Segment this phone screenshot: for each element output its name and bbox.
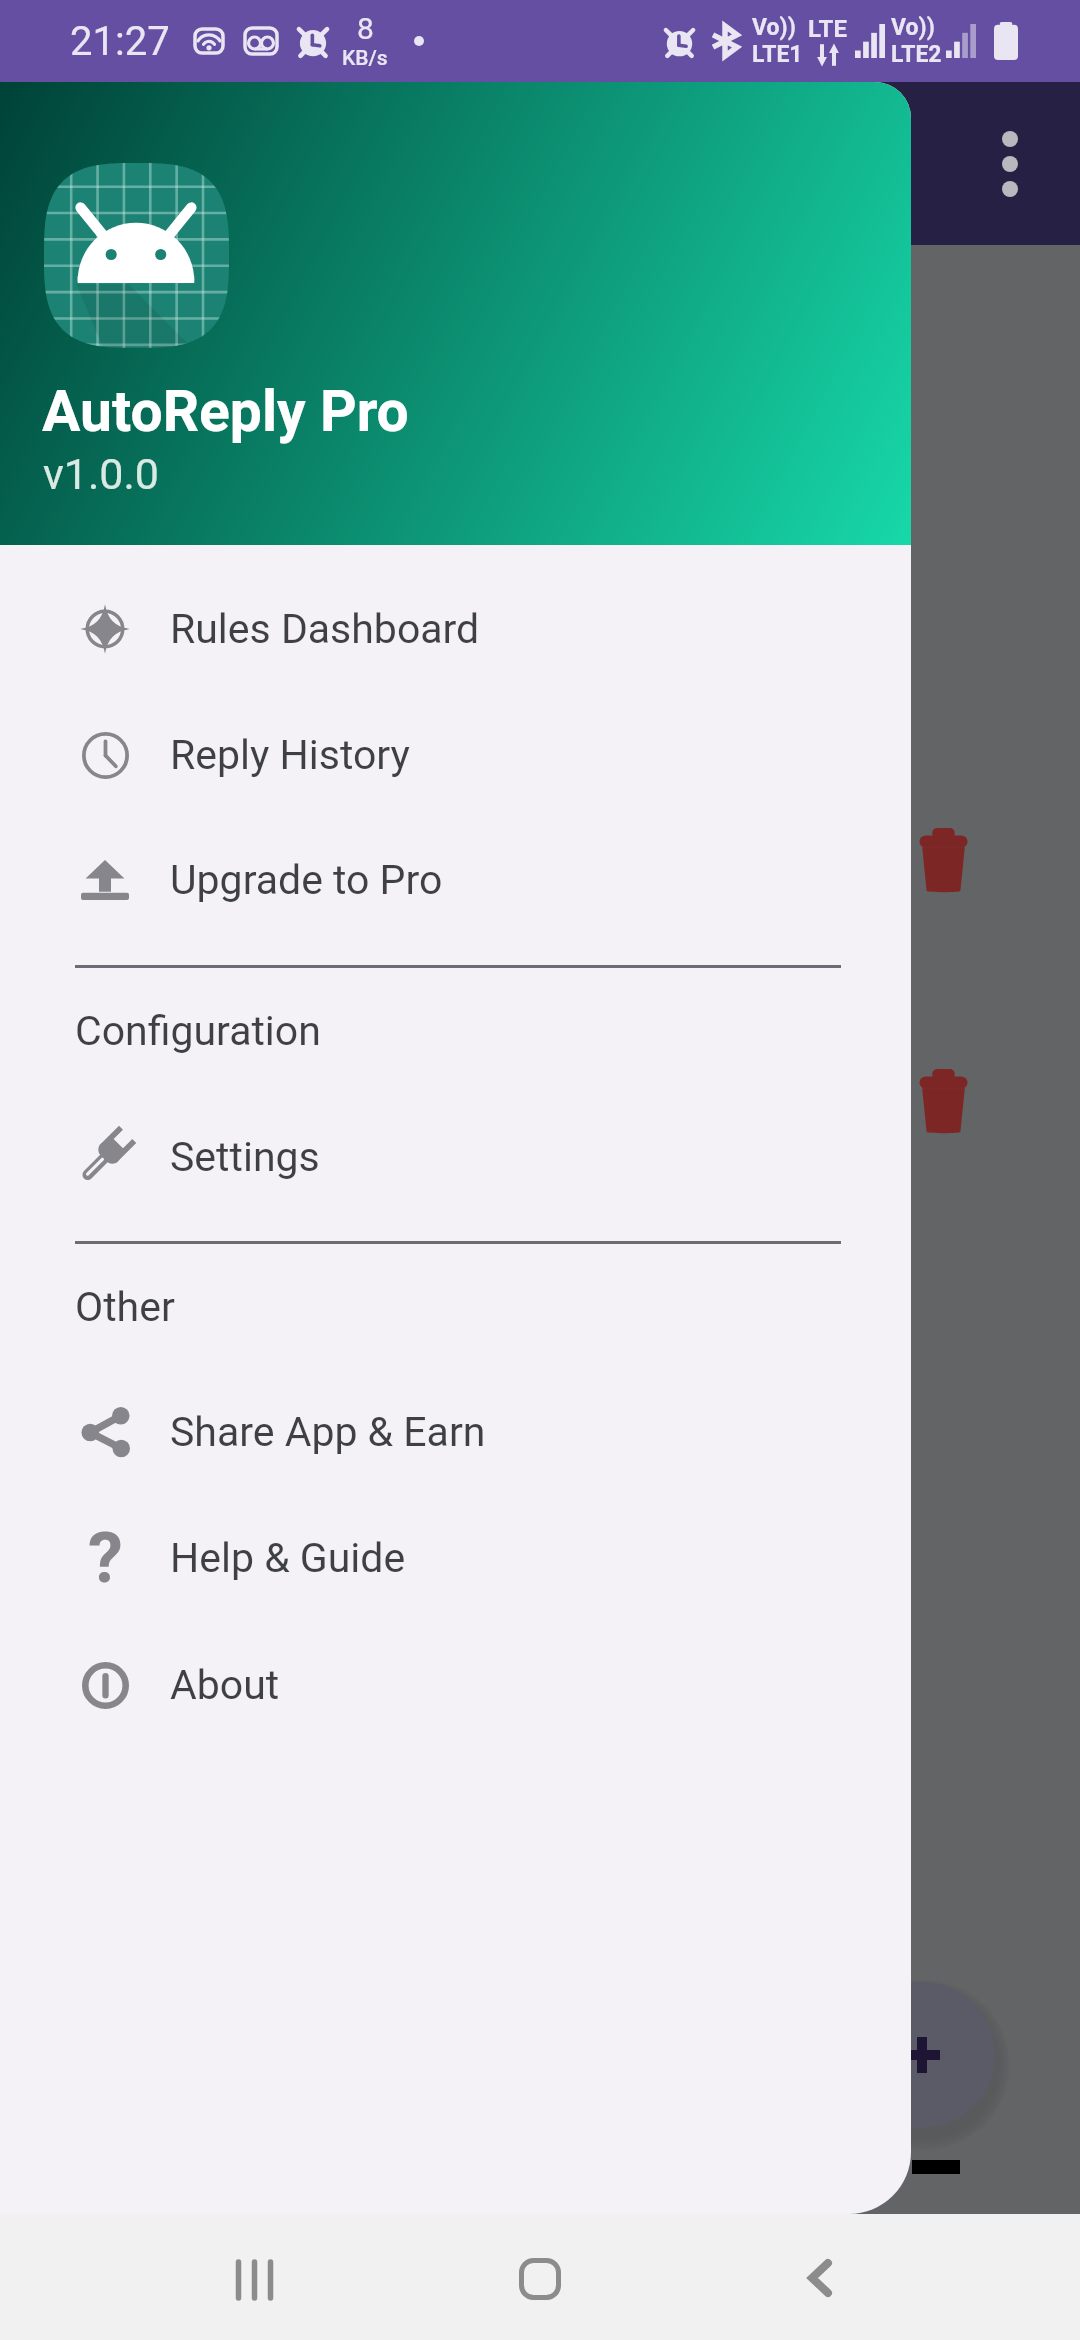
staticText: ? (88, 1517, 123, 1599)
staticText: Upgrade to Pro (170, 856, 443, 904)
staticText: LTE1 (752, 41, 803, 68)
button[interactable]: ? (0, 1495, 911, 1621)
button[interactable]: Settings (0, 1094, 911, 1220)
staticText: Settings (170, 1133, 320, 1181)
button[interactable]: Home (450, 2214, 1080, 2340)
button[interactable]: Upgrade to Pro (0, 817, 911, 943)
staticText: AutoReply Pro (42, 378, 409, 445)
staticText: 8 (357, 11, 374, 46)
staticText: Other (75, 1283, 175, 1331)
staticText: v1.0.0 (43, 449, 160, 499)
staticText: About (170, 1661, 280, 1709)
button[interactable]: Recent apps (168, 2214, 1080, 2340)
button[interactable]: Share App & Earn (0, 1369, 911, 1495)
staticText: Help & Guide (170, 1534, 406, 1582)
button[interactable]: Rules Dashboard (0, 566, 911, 692)
staticText: Vo)) (752, 14, 796, 41)
staticText: LTE2 (891, 41, 942, 68)
staticText: Vo)) (891, 14, 935, 41)
button[interactable]: Back (730, 2214, 1080, 2340)
staticText: Share App & Earn (170, 1408, 486, 1456)
staticText: Configuration (75, 1007, 321, 1055)
button[interactable]: Reply History (0, 692, 911, 818)
button[interactable]: About (0, 1622, 911, 1748)
staticText: Rules Dashboard (170, 605, 480, 653)
button[interactable]: Add rule (849, 1982, 995, 2128)
staticText: KB/s (342, 46, 388, 71)
button[interactable]: More options (962, 116, 1058, 212)
staticText: 21:27 (70, 18, 170, 65)
staticText: Reply History (170, 731, 410, 779)
staticText: LTE (808, 15, 847, 43)
